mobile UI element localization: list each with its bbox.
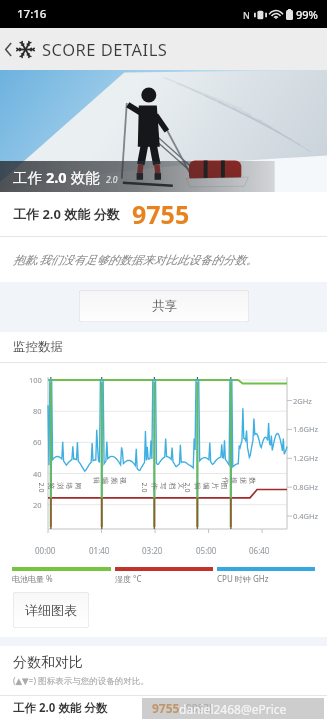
staticText: 40	[33, 469, 42, 479]
staticText: (▲▼=) 图标表示与您的设备的对比。	[13, 675, 149, 687]
staticText: 01:40	[89, 545, 110, 556]
staticText: 20	[33, 500, 42, 510]
staticText: 数据操作	[221, 477, 257, 489]
staticText: 0.4GHz	[293, 511, 319, 521]
staticText: 80	[33, 406, 42, 416]
staticText: 图片编辑 2.0	[181, 482, 228, 494]
staticText: 06:40	[249, 545, 270, 556]
staticText: 分数和对比	[13, 654, 83, 672]
staticText: N	[243, 9, 250, 21]
staticText: 网络浏览 2.0	[35, 482, 82, 494]
staticText: 2GHz	[293, 396, 312, 406]
staticText: 监控数据	[13, 339, 63, 355]
staticText: 文档写作 2.0	[138, 482, 185, 494]
staticText: daniel2468@ePrice	[179, 701, 287, 717]
staticText: 效能	[67, 167, 100, 187]
staticText: 2.0	[46, 167, 67, 187]
staticText: 湿度 °C	[115, 573, 142, 584]
staticText: 00:00	[35, 545, 56, 556]
staticText: 99%	[296, 7, 318, 22]
staticText: SCORE DETAILS	[42, 38, 168, 60]
staticText: 视频编辑	[92, 477, 128, 489]
staticText: 2.0	[106, 174, 118, 186]
staticText: 17:16	[17, 6, 47, 22]
button[interactable]: 详细图表	[13, 592, 89, 628]
staticText: 9755	[152, 700, 180, 716]
staticText: 详细图表	[25, 602, 77, 618]
staticText: 05:00	[196, 545, 217, 556]
staticText: CPU 时钟 GHz	[217, 573, 269, 584]
staticText: 工作 2.0 效能 分数	[13, 205, 120, 223]
staticText: 工作 2.0 效能 分数	[13, 700, 108, 716]
staticText: 03:20	[142, 545, 163, 556]
staticText: 9755	[132, 197, 190, 231]
button[interactable]: 共享	[79, 290, 249, 322]
button[interactable]: Back	[0, 28, 16, 70]
staticText: 0.8GHz	[293, 482, 319, 492]
staticText: (9883)	[183, 701, 212, 715]
staticText: 60	[33, 437, 42, 447]
staticText: 抱歉,我们没有足够的数据来对比此设备的分数。	[13, 252, 258, 268]
staticText: 1.2GHz	[293, 453, 319, 463]
staticText: 电池电量 %	[12, 573, 53, 584]
staticText: 共享	[152, 298, 177, 314]
staticText: 100	[29, 375, 42, 385]
staticText: 工作	[13, 167, 46, 187]
staticText: 1.6GHz	[293, 424, 319, 434]
